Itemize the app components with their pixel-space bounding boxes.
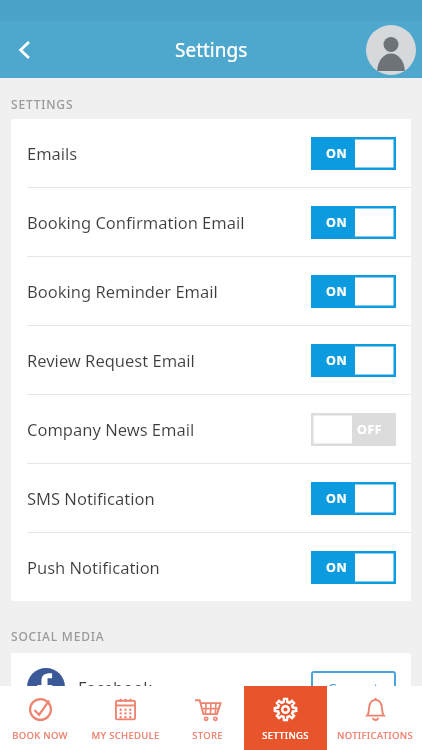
staticText: ON xyxy=(326,352,348,369)
staticText: ON xyxy=(326,559,348,576)
staticText: SMS Notification xyxy=(27,487,311,509)
staticText: ON xyxy=(326,283,348,300)
staticText: BOOK NOW xyxy=(12,729,68,742)
staticText: Settings xyxy=(175,37,248,63)
button[interactable]: Booking Reminder Email xyxy=(11,257,411,325)
button[interactable]: Switch off xyxy=(311,413,396,446)
button[interactable]: Facebook xyxy=(11,653,411,721)
button[interactable]: Switch on xyxy=(311,482,396,515)
staticText: ON xyxy=(326,490,348,507)
button[interactable]: SETTINGS xyxy=(244,686,327,750)
button[interactable]: Switch on xyxy=(311,551,396,584)
button[interactable]: Back xyxy=(2,27,48,73)
button[interactable]: NOTIFICATIONS xyxy=(327,686,422,750)
staticText: Booking Reminder Email xyxy=(27,280,311,302)
button[interactable]: Profile xyxy=(366,25,416,75)
staticText: Push Notification xyxy=(27,556,311,578)
button[interactable]: Booking Confirmation Email xyxy=(11,188,411,256)
staticText: Facebook xyxy=(78,676,311,698)
staticText: Company News Email xyxy=(27,418,311,440)
staticText: Emails xyxy=(27,142,311,164)
staticText: MY SCHEDULE xyxy=(91,729,160,742)
staticText: Booking Confirmation Email xyxy=(27,211,311,233)
button[interactable]: SMS Notification xyxy=(11,464,411,532)
staticText: Review Request Email xyxy=(27,349,311,371)
staticText: Connect xyxy=(328,679,379,697)
button[interactable]: Connect xyxy=(311,671,396,704)
button[interactable]: Emails xyxy=(11,119,411,187)
button[interactable]: MY SCHEDULE xyxy=(80,686,171,750)
button[interactable]: STORE xyxy=(171,686,244,750)
button[interactable]: Company News Email xyxy=(11,395,411,463)
staticText: SOCIAL MEDIA xyxy=(11,628,105,644)
staticText: NOTIFICATIONS xyxy=(337,729,413,742)
staticText: ON xyxy=(326,145,348,162)
button[interactable]: Switch on xyxy=(311,206,396,239)
staticText: OFF xyxy=(357,421,383,438)
button[interactable]: Switch on xyxy=(311,344,396,377)
button[interactable]: Switch on xyxy=(311,275,396,308)
staticText: STORE xyxy=(192,729,223,742)
staticText: SETTINGS xyxy=(11,96,74,112)
button[interactable]: BOOK NOW xyxy=(0,686,80,750)
button[interactable]: Switch on xyxy=(311,137,396,170)
staticText: ON xyxy=(326,214,348,231)
button[interactable]: Push Notification xyxy=(11,533,411,601)
button[interactable]: Review Request Email xyxy=(11,326,411,394)
staticText: SETTINGS xyxy=(262,729,309,742)
